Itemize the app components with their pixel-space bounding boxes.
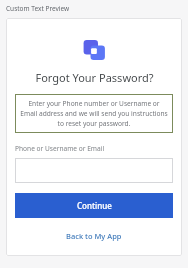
button[interactable]: [15, 158, 173, 183]
staticText: Phone or Username or Email: [15, 144, 105, 153]
staticText: Enter your Phone number or Username or E…: [20, 99, 168, 128]
staticText: Back to My App: [66, 231, 122, 241]
button[interactable]: Continue: [15, 193, 173, 218]
button[interactable]: Back to My App: [58, 229, 130, 243]
staticText: Continue: [77, 200, 112, 211]
staticText: Custom Text Preview: [6, 4, 70, 13]
staticText: Forgot Your Password?: [35, 70, 154, 85]
